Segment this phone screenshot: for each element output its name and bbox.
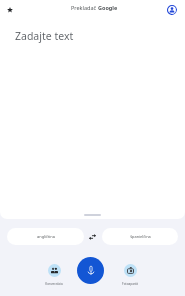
button[interactable]: Swap languages <box>84 229 101 244</box>
staticText: španielčina <box>130 234 151 239</box>
staticText: Zadajte text <box>15 29 74 43</box>
button[interactable]: Account <box>166 4 177 15</box>
staticText: Fotoaparát <box>122 282 138 286</box>
button[interactable]: angličtina <box>7 228 84 245</box>
staticText: Google <box>98 4 118 11</box>
button[interactable]: Konverzácia <box>34 264 74 290</box>
staticText: Konverzácia <box>45 282 63 286</box>
staticText: angličtina <box>37 234 55 239</box>
button[interactable]: španielčina <box>102 228 178 245</box>
button[interactable]: Saved translations <box>3 3 17 17</box>
button[interactable]: Speak <box>77 257 104 284</box>
button[interactable]: Fotoaparát <box>110 264 150 290</box>
staticText: Prekladač <box>71 4 98 11</box>
